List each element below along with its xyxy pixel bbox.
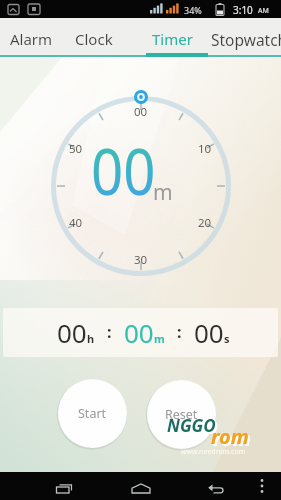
staticText: AM <box>258 6 269 16</box>
button[interactable]: Start <box>58 379 127 448</box>
staticText: : <box>107 321 112 343</box>
button[interactable]: Clock <box>69 24 125 54</box>
staticText: Clock <box>75 29 113 49</box>
staticText: 00 <box>134 104 148 120</box>
staticText: h <box>87 331 95 346</box>
button[interactable] <box>161 472 241 500</box>
staticText: 30 <box>134 252 148 268</box>
staticText: Timer <box>152 29 193 49</box>
staticText: 00 <box>124 315 154 350</box>
button[interactable]: Timer <box>146 24 202 54</box>
button[interactable] <box>241 472 281 500</box>
staticText: rom <box>213 425 251 452</box>
staticText: 00 <box>57 315 87 350</box>
staticText: m <box>154 331 165 346</box>
staticText: www.needrom.com <box>181 447 246 457</box>
staticText: 10 <box>198 141 212 157</box>
staticText: 3:10 <box>233 3 253 17</box>
staticText: s <box>224 331 230 346</box>
staticText: Start <box>78 405 107 422</box>
staticText: NGGO <box>169 416 218 439</box>
staticText: 34% <box>184 4 202 16</box>
staticText: 00 <box>91 127 156 214</box>
staticText: rom <box>211 423 249 450</box>
staticText: 40 <box>69 215 83 231</box>
button[interactable]: Alarm <box>4 24 60 54</box>
button[interactable] <box>81 472 161 500</box>
staticText: : <box>177 321 182 343</box>
staticText: 00 <box>194 315 224 350</box>
staticText: Reset <box>165 406 198 423</box>
staticText: 50 <box>69 141 83 157</box>
button[interactable]: Reset <box>147 380 216 449</box>
staticText: NGGO <box>167 414 216 437</box>
staticText: Alarm <box>10 29 53 49</box>
staticText: Stopwatch <box>211 29 281 50</box>
staticText: m <box>153 178 173 207</box>
staticText: 20 <box>198 215 212 231</box>
button[interactable]: Stopwatch <box>204 24 281 54</box>
button[interactable] <box>0 472 81 500</box>
